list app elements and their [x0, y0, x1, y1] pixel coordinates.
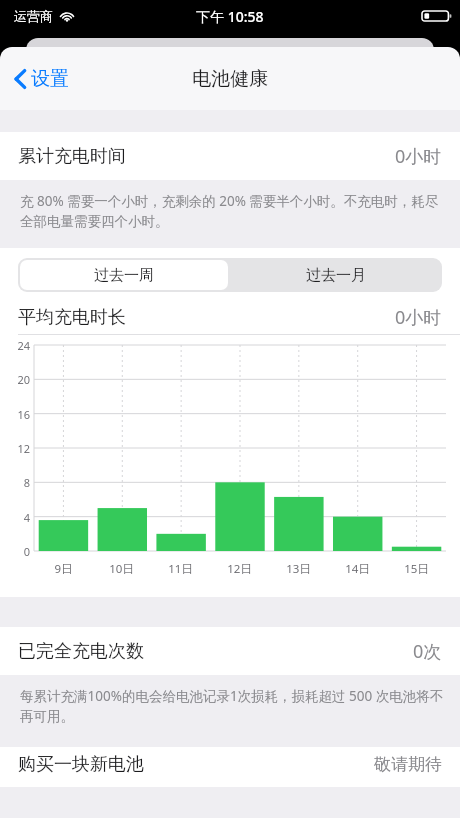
- staticText: 敬请期待: [374, 754, 442, 775]
- button[interactable]: 累计充电时间: [0, 132, 460, 180]
- staticText: 15日: [404, 561, 429, 577]
- staticText: 过去一月: [306, 266, 366, 285]
- staticText: 16: [0, 407, 30, 422]
- staticText: 设置: [31, 67, 69, 91]
- button[interactable]: 过去一月: [230, 258, 442, 292]
- staticText: 12日: [227, 561, 252, 577]
- staticText: 20: [0, 372, 30, 387]
- staticText: 14日: [345, 561, 370, 577]
- staticText: 平均充电时长: [18, 306, 126, 329]
- staticText: 过去一周: [94, 266, 154, 285]
- staticText: 9日: [54, 561, 73, 577]
- staticText: 0小时: [395, 305, 442, 330]
- staticText: 运营商: [14, 8, 53, 24]
- staticText: 12: [0, 441, 30, 456]
- staticText: 0: [0, 544, 30, 559]
- staticText: 电池健康: [192, 67, 268, 91]
- staticText: 11日: [168, 561, 193, 577]
- staticText: 充 80% 需要一个小时，充剩余的 20% 需要半个小时。不充电时，耗尽全部电量…: [20, 192, 444, 230]
- staticText: 13日: [286, 561, 311, 577]
- staticText: 购买一块新电池: [18, 753, 144, 776]
- staticText: 已完全充电次数: [18, 640, 144, 663]
- button[interactable]: 过去一周: [20, 260, 228, 290]
- staticText: 8: [0, 475, 30, 490]
- staticText: 24: [0, 338, 30, 353]
- staticText: 0小时: [395, 144, 442, 169]
- staticText: 10日: [109, 561, 134, 577]
- staticText: 每累计充满100%的电会给电池记录1次损耗，损耗超过 500 次电池将不再可用。: [20, 687, 444, 725]
- staticText: 累计充电时间: [18, 145, 126, 168]
- staticText: 0次: [413, 639, 442, 664]
- staticText: 下午 10:58: [196, 7, 264, 26]
- staticText: 4: [0, 510, 30, 525]
- button[interactable]: 购买一块新电池: [0, 747, 460, 787]
- button[interactable]: 设置: [8, 61, 75, 97]
- button[interactable]: 已完全充电次数: [0, 627, 460, 675]
